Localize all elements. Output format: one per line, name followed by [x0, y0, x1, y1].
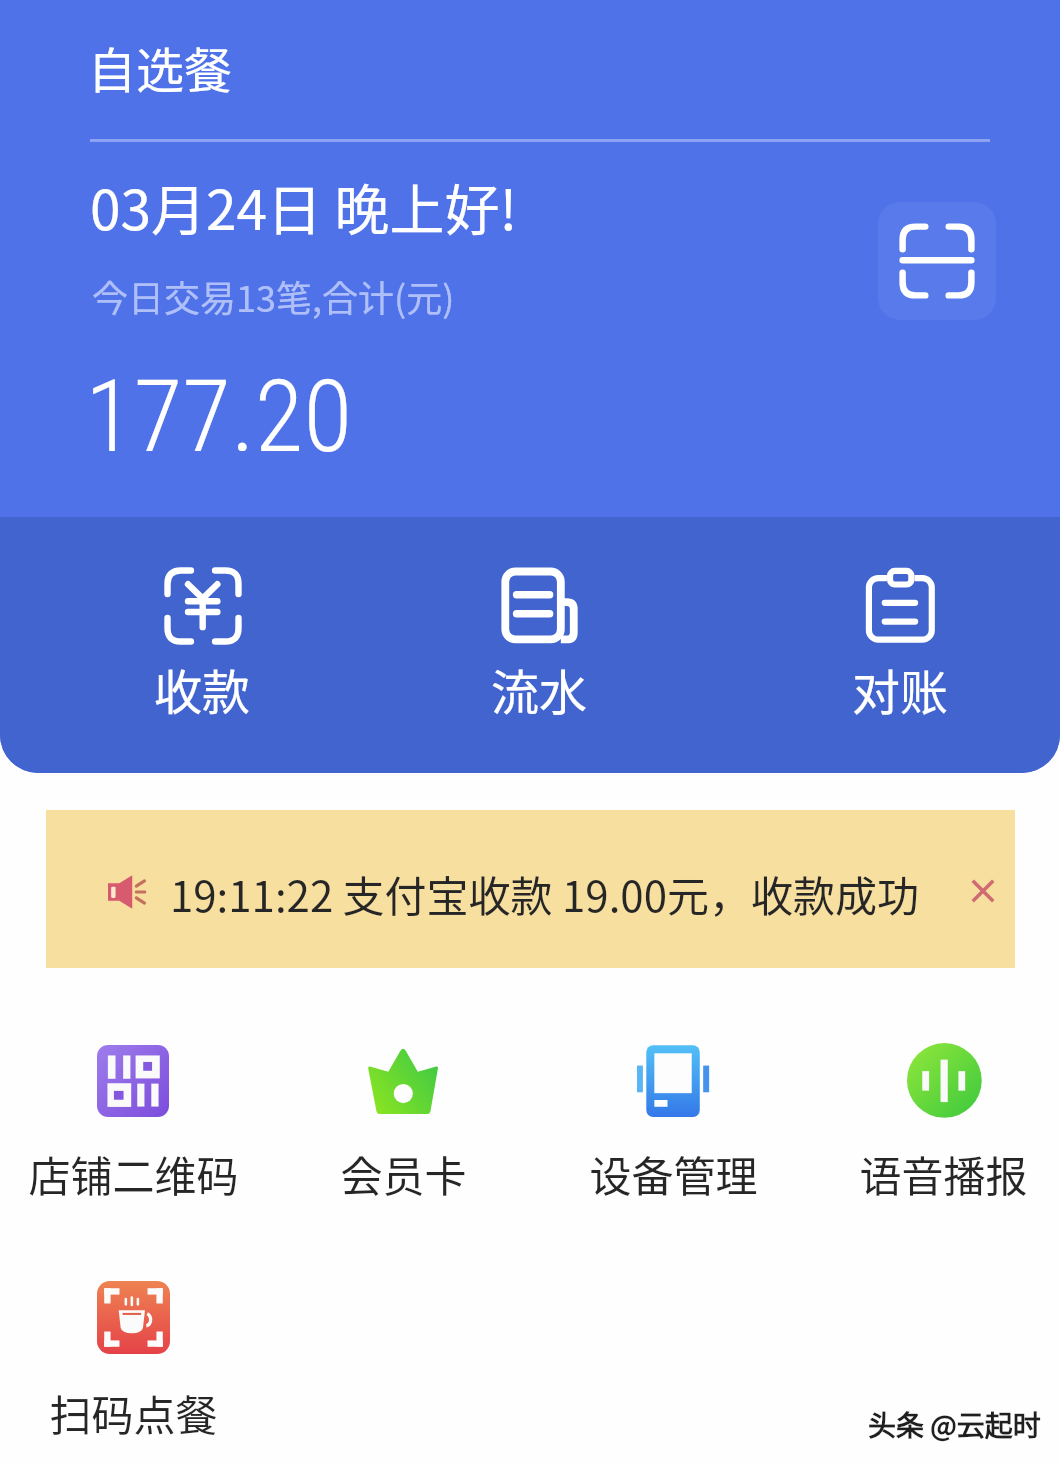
- staticText: 流水: [491, 654, 588, 719]
- staticText: 今日交易13笔,合计(元): [92, 270, 455, 322]
- staticText: 19:11:22 支付宝收款 19.00元，收款成功: [170, 863, 919, 924]
- button[interactable]: 扫一扫: [878, 202, 996, 320]
- staticText: 扫码点餐: [49, 1382, 218, 1443]
- staticText: 头条 @云起时: [868, 1404, 1041, 1445]
- button[interactable]: 流水: [461, 549, 617, 719]
- staticText: 收款: [154, 654, 251, 719]
- button[interactable]: 19:11:22 支付宝收款 19.00元，收款成功: [46, 810, 1015, 968]
- staticText: 对账: [852, 654, 949, 719]
- staticText: 177.20: [85, 358, 353, 475]
- button[interactable]: 店铺二维码: [0, 1023, 268, 1199]
- staticText: 语音播报: [859, 1143, 1028, 1204]
- button[interactable]: 对账: [822, 549, 978, 719]
- button[interactable]: 设备管理: [538, 1023, 808, 1199]
- button[interactable]: 语音播报: [808, 1023, 1060, 1199]
- staticText: 店铺二维码: [28, 1143, 239, 1204]
- staticText: 03月24日 晚上好!: [90, 166, 518, 246]
- staticText: 会员卡: [340, 1143, 467, 1204]
- staticText: 自选餐: [88, 32, 233, 102]
- button[interactable]: 收款: [124, 549, 280, 719]
- button[interactable]: 关闭: [942, 850, 1024, 932]
- button[interactable]: 会员卡: [268, 1023, 538, 1199]
- button[interactable]: 扫码点餐: [0, 1259, 268, 1438]
- staticText: 设备管理: [589, 1143, 758, 1204]
